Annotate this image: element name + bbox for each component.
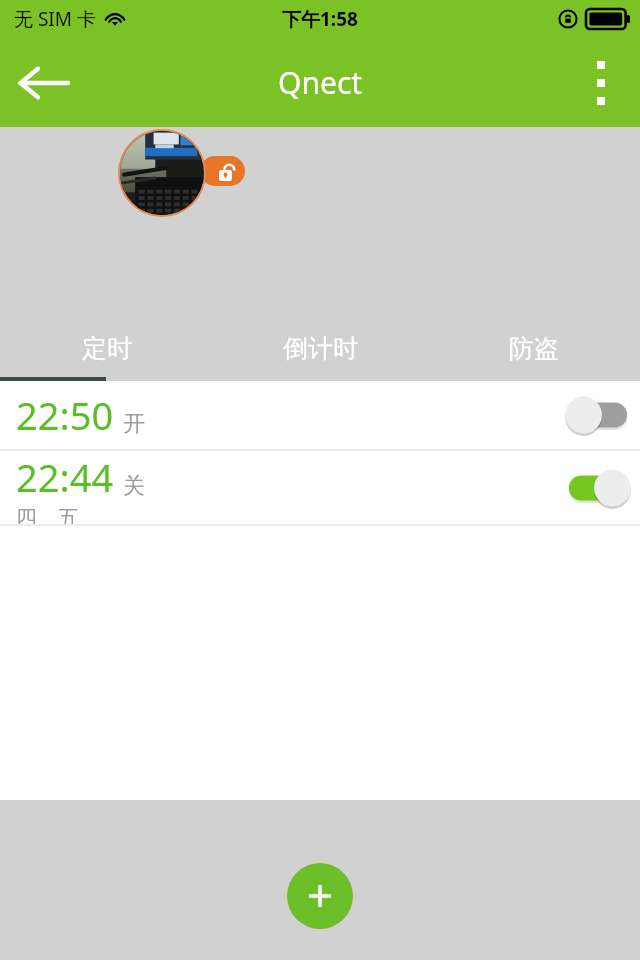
button[interactable]: Add alarm xyxy=(287,863,353,929)
button[interactable]: 防盗 xyxy=(427,315,640,381)
button[interactable]: 定时 xyxy=(0,315,214,381)
button[interactable]: Back xyxy=(6,46,80,120)
staticText: 防盗 xyxy=(509,333,559,364)
staticText: 无 SIM 卡 xyxy=(14,6,96,32)
button[interactable] xyxy=(120,131,204,215)
staticText: 四、五 xyxy=(16,505,79,524)
button[interactable]: Alarm off xyxy=(567,395,629,435)
button[interactable]: 倒计时 xyxy=(214,315,427,381)
button[interactable]: 22:44 xyxy=(0,451,640,524)
staticText: Qnect xyxy=(278,62,363,103)
button[interactable]: Unlocked xyxy=(200,156,245,186)
staticText: 22:50 xyxy=(16,389,114,441)
staticText: 关 xyxy=(123,472,145,500)
button[interactable]: Alarm on xyxy=(567,468,629,508)
button[interactable]: More options xyxy=(570,52,632,114)
staticText: 下午1:58 xyxy=(282,6,358,32)
staticText: 22:44 xyxy=(16,451,114,503)
staticText: 倒计时 xyxy=(283,333,358,364)
staticText: 开 xyxy=(123,410,145,438)
button[interactable]: 22:50 xyxy=(0,381,640,449)
staticText: 定时 xyxy=(82,333,132,364)
